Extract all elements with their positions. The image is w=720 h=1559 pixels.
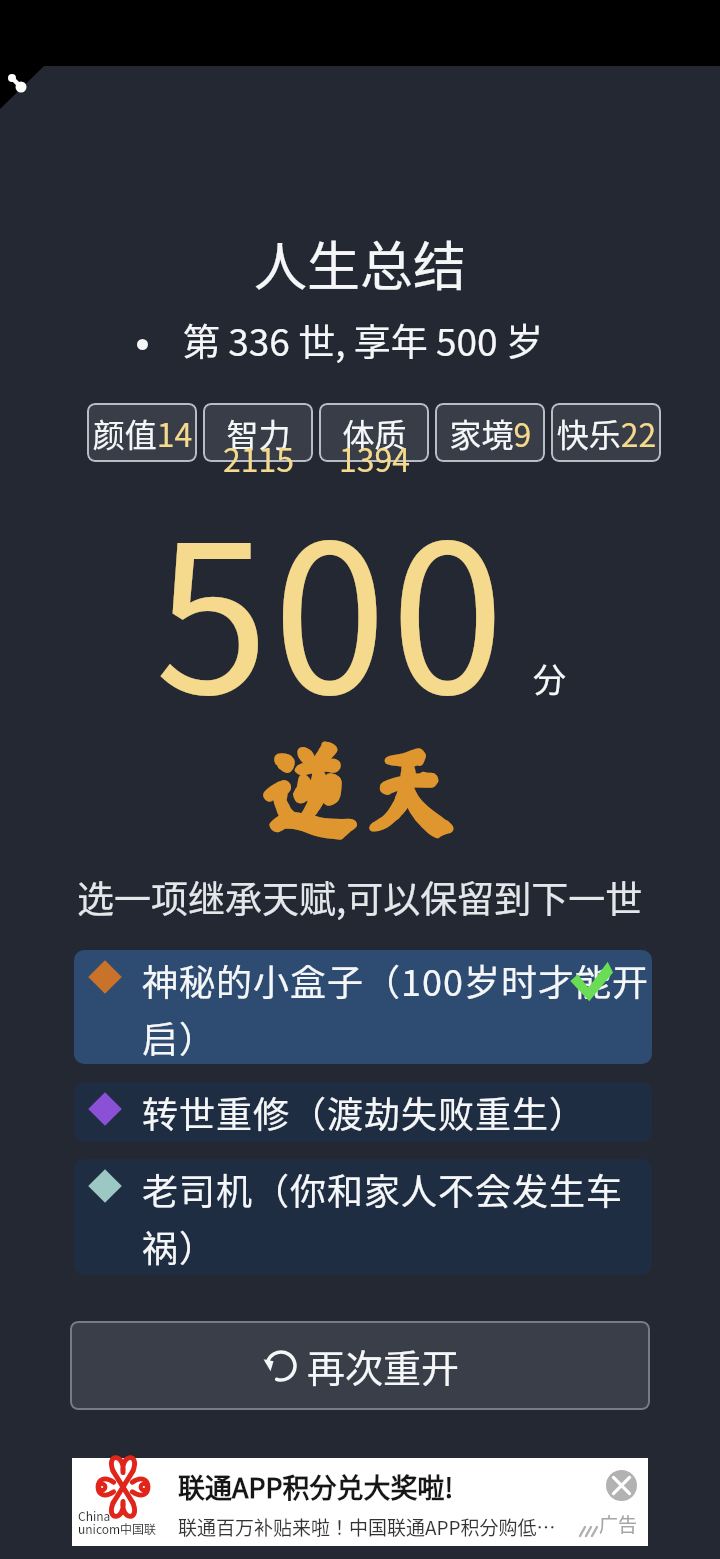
staticText: unicom中国联通: [78, 1520, 168, 1537]
button[interactable]: Back: [0, 0, 60, 115]
staticText: 逆天: [260, 738, 460, 838]
staticText: 智力2115: [204, 410, 313, 481]
staticText: 再次重开: [307, 1338, 460, 1393]
button[interactable]: 老司机（你和家人不会发生车祸）: [74, 1159, 652, 1275]
staticText: China: [78, 1507, 111, 1524]
staticText: 选一项继承天赋,可以保留到下一世: [77, 870, 643, 924]
staticText: 500: [155, 455, 509, 752]
button[interactable]: [551, 403, 661, 462]
staticText: 快乐22: [552, 410, 661, 456]
staticText: 联通百万补贴来啦！中国联通APP积分购低…: [178, 1513, 556, 1541]
staticText: 分: [533, 654, 566, 702]
button[interactable]: [203, 403, 313, 462]
button[interactable]: 再次重开: [70, 1321, 650, 1410]
button[interactable]: 神秘的小盒子（100岁时才能开启）: [74, 950, 652, 1064]
staticText: 老司机（你和家人不会发生车祸）: [142, 1163, 652, 1272]
button[interactable]: [319, 403, 429, 462]
staticText: 逆天: [260, 738, 460, 838]
staticText: 体质1394: [320, 410, 429, 481]
staticText: 转世重修（渡劫失败重生）: [142, 1086, 587, 1138]
staticText: 神秘的小盒子（100岁时才能开启）: [142, 954, 652, 1063]
staticText: 第 336 世, 享年 500 岁: [183, 313, 543, 367]
button[interactable]: China: [72, 1458, 648, 1546]
staticText: 颜值14: [88, 410, 197, 456]
staticText: 广告: [599, 1510, 638, 1538]
staticText: 家境9: [436, 410, 545, 456]
button[interactable]: 转世重修（渡劫失败重生）: [74, 1082, 652, 1142]
button[interactable]: [87, 403, 197, 462]
staticText: 联通APP积分兑大奖啦!: [178, 1467, 454, 1506]
button[interactable]: [435, 403, 545, 462]
staticText: 人生总结: [254, 225, 466, 302]
button[interactable]: Close ad: [594, 1458, 648, 1512]
